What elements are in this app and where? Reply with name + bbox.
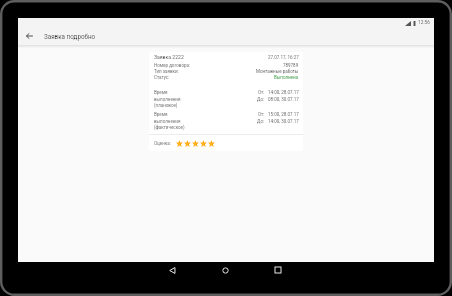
staticText: Время выполнения (плановое) xyxy=(154,90,198,108)
staticText: Заявка подробно xyxy=(44,33,96,40)
staticText: 08:00, 30.07.17 xyxy=(268,97,299,102)
staticText: 12:56 xyxy=(418,20,430,26)
button[interactable]: Rate 3 xyxy=(191,136,199,150)
staticText: Время выполнения (фактическое) xyxy=(154,112,198,130)
button[interactable]: Recent apps xyxy=(258,262,298,278)
button[interactable]: Home xyxy=(205,262,245,278)
staticText: Номер договора: xyxy=(154,63,191,68)
staticText: Заявка 2222 xyxy=(154,54,184,60)
staticText: Оценка: xyxy=(154,141,171,146)
button[interactable]: Rate 1 xyxy=(175,136,183,150)
staticText: 14:00, 30.07.17 xyxy=(268,119,299,124)
staticText: От: xyxy=(258,90,265,95)
button[interactable]: Back xyxy=(25,28,33,44)
staticText: 789789 xyxy=(283,63,299,68)
staticText: Тип заявки: xyxy=(154,69,179,74)
staticText: Монтажные работы xyxy=(256,69,299,74)
staticText: До: xyxy=(257,97,265,102)
staticText: От: xyxy=(258,112,265,117)
button[interactable]: Rate 4 xyxy=(199,136,207,150)
staticText: 15:00, 28.07.17 xyxy=(268,112,299,117)
staticText: Выполнена xyxy=(274,75,299,80)
button[interactable]: Back xyxy=(152,262,192,278)
staticText: Статус: xyxy=(154,75,170,80)
staticText: 14:00, 28.07.17 xyxy=(268,90,299,95)
button[interactable]: Rate 2 xyxy=(183,136,191,150)
button[interactable]: Rate 5 xyxy=(207,136,215,150)
staticText: До: xyxy=(257,119,265,124)
staticText: 27.07.17, 16:27 xyxy=(268,55,299,60)
